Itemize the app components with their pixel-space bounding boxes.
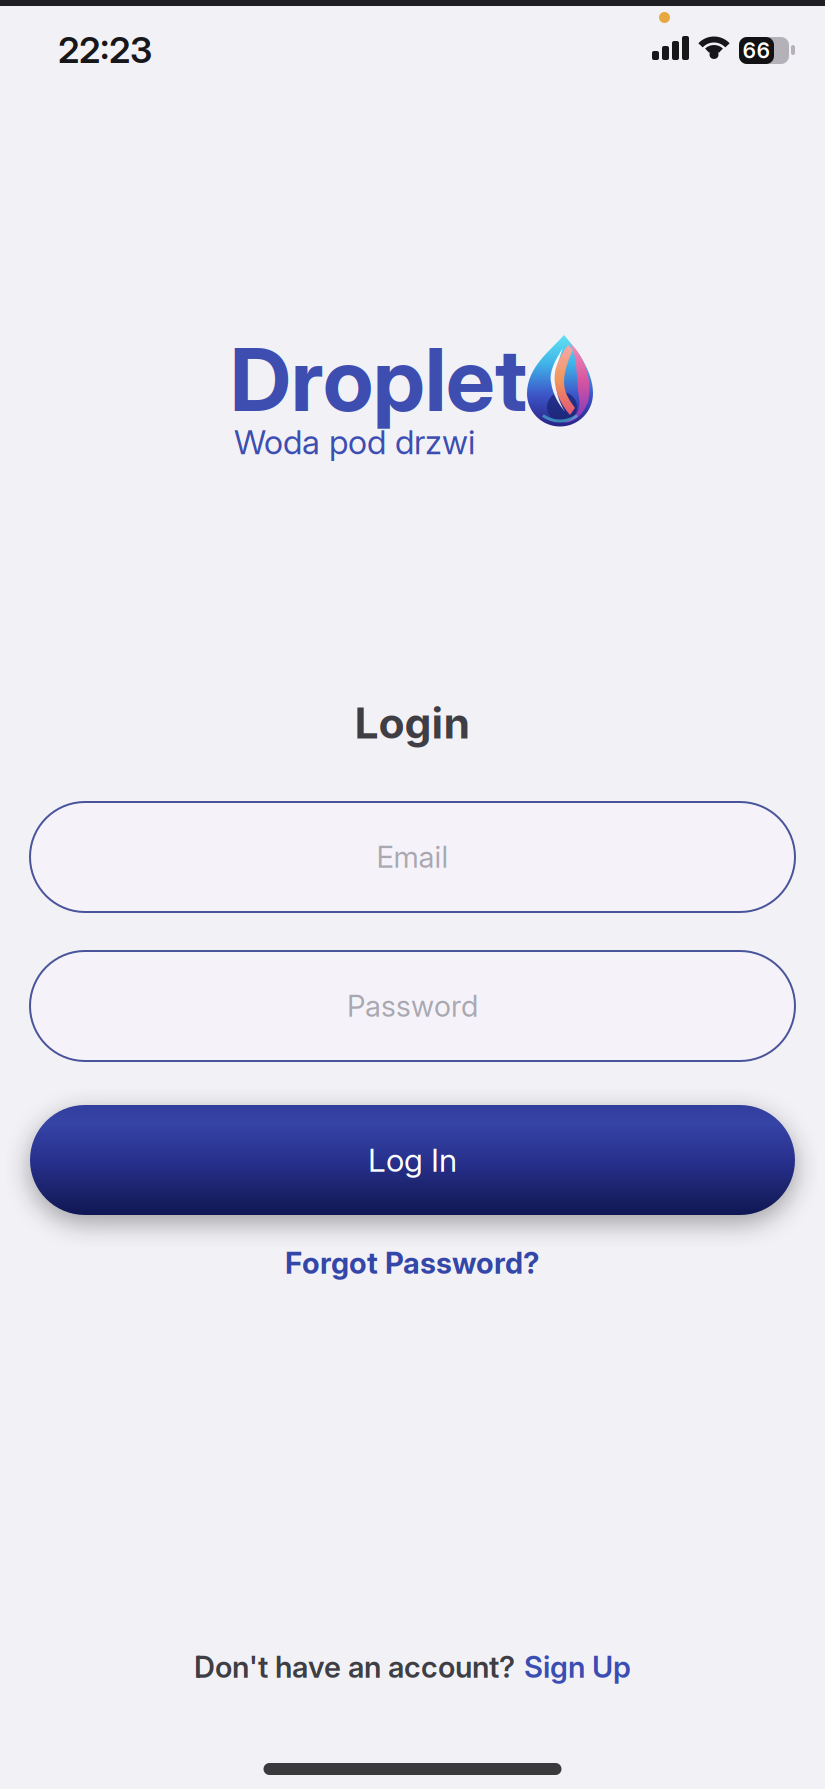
- staticText: Woda pod drzwi: [234, 422, 475, 462]
- staticText: Password: [347, 988, 478, 1024]
- staticText: Don't have an account?: [194, 1649, 515, 1685]
- staticText: Forgot Password?: [285, 1245, 540, 1281]
- staticText: 66: [742, 38, 770, 63]
- staticText: Droplet: [230, 327, 527, 432]
- staticText: Log In: [368, 1141, 457, 1179]
- staticText: Email: [376, 839, 448, 875]
- staticText: Sign Up: [524, 1649, 631, 1685]
- staticText: Login: [354, 697, 470, 749]
- staticText: 22:23: [58, 28, 152, 72]
